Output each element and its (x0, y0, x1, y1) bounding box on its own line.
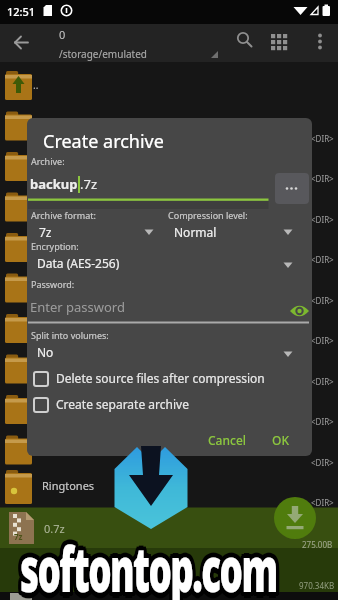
button[interactable] (30, 291, 290, 317)
staticText: <DIR> (311, 457, 334, 468)
staticText: softontop.com (20, 521, 277, 600)
staticText: Split into volumes: (31, 329, 109, 341)
staticText: <DIR> (311, 416, 334, 427)
staticText: 12:51 (7, 4, 36, 19)
button[interactable] (30, 218, 158, 240)
button[interactable] (0, 507, 338, 547)
staticText: <DIR> (311, 295, 334, 306)
staticText: Archive: (31, 155, 65, 167)
staticText: Encryption: (31, 240, 79, 252)
button[interactable]: Cancel (27, 118, 66, 134)
staticText: backup (30, 175, 78, 193)
staticText: Archive format: (31, 209, 96, 221)
button[interactable] (31, 395, 301, 415)
staticText: 7z (14, 531, 23, 542)
staticText: Data (AES-256) (37, 255, 120, 271)
staticText: .7z (80, 175, 98, 193)
staticText: softontop.com (17, 523, 274, 600)
staticText: 7z (39, 224, 52, 240)
button[interactable] (274, 497, 316, 539)
staticText: <DIR> (311, 254, 334, 265)
button[interactable]: OK (27, 118, 44, 134)
button[interactable] (0, 467, 338, 507)
staticText: 970.34KB (299, 580, 335, 591)
staticText: softontop.com (17, 526, 274, 600)
staticText: <DIR> (311, 497, 334, 508)
staticText: Ringtones (42, 478, 95, 493)
staticText: <DIR> (311, 173, 334, 184)
staticText: softontop.com (23, 526, 280, 600)
staticText: Compression level: (168, 209, 248, 221)
button[interactable] (265, 27, 292, 50)
staticText: <DIR> (311, 214, 334, 225)
staticText: Enter password (30, 298, 125, 316)
staticText: softontop.com (23, 529, 280, 600)
staticText: <DIR> (311, 335, 334, 346)
button[interactable] (8, 31, 38, 55)
staticText: Create archive (43, 129, 164, 154)
staticText: <DIR> (311, 376, 334, 387)
button[interactable] (31, 369, 301, 389)
staticText: softontop.com (22, 530, 279, 600)
staticText: softontop.com (23, 523, 280, 600)
staticText: .. (33, 78, 39, 92)
staticText: softontop.com (20, 531, 277, 600)
staticText: <DIR> (311, 133, 334, 144)
button[interactable] (30, 339, 297, 361)
staticText: /storage/emulated (59, 47, 147, 61)
button[interactable] (231, 27, 255, 50)
staticText: No (37, 344, 54, 360)
staticText: softontop.com (18, 530, 274, 600)
button[interactable] (167, 218, 297, 240)
button[interactable] (30, 250, 297, 272)
staticText: Delete source files after compression (56, 370, 265, 386)
staticText: 0 (59, 27, 66, 42)
staticText: softontop.com (18, 522, 274, 600)
staticText: softontop.com (22, 522, 279, 600)
staticText: softontop.com (17, 529, 274, 600)
staticText: 275.00B (302, 539, 333, 550)
staticText: Create separate archive (56, 396, 189, 412)
staticText: Normal (174, 224, 217, 240)
staticText: softontop.com (20, 526, 277, 600)
button[interactable] (275, 173, 309, 204)
staticText: Password: (31, 278, 75, 290)
button[interactable] (308, 27, 332, 50)
staticText: 0.7z (44, 521, 65, 536)
